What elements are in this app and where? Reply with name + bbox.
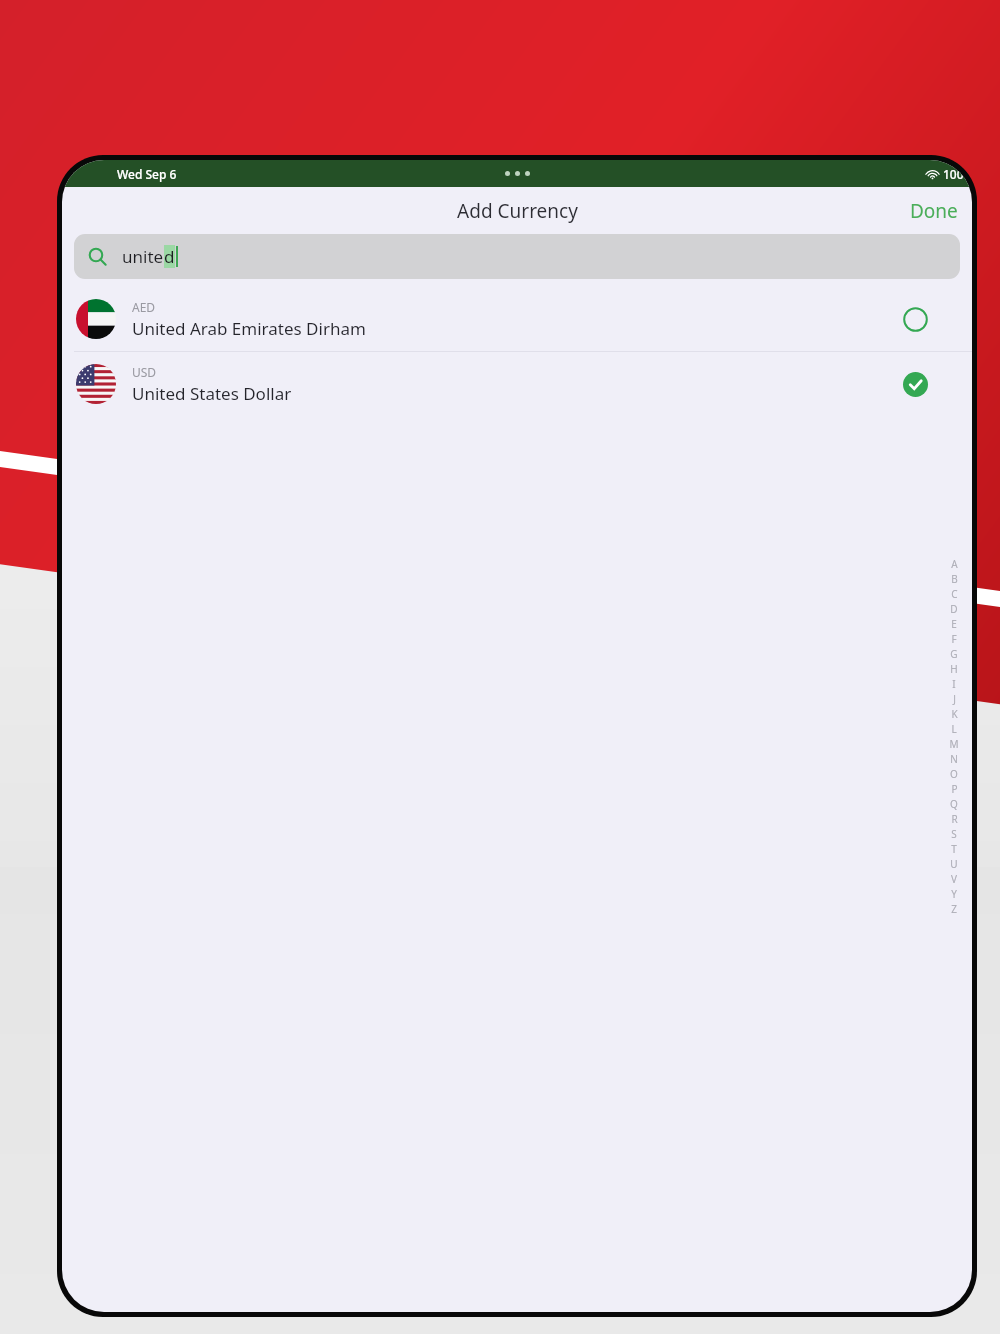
other: Selected (903, 372, 928, 397)
staticText: K (951, 707, 958, 721)
staticText: 100 (943, 166, 964, 182)
staticText: A (951, 557, 958, 571)
button[interactable]: USD (62, 352, 972, 416)
staticText: G (950, 647, 958, 661)
staticText: J (953, 692, 956, 706)
staticText: unite (122, 245, 164, 268)
staticText: N (950, 752, 958, 766)
staticText: Y (951, 887, 957, 901)
staticText: R (951, 812, 958, 826)
staticText: L (951, 722, 957, 736)
staticText: Q (950, 797, 958, 811)
staticText: T (951, 842, 957, 856)
staticText: AED (132, 299, 156, 315)
staticText: U (950, 857, 958, 871)
button[interactable]: AED (62, 287, 972, 351)
staticText: I (952, 677, 956, 691)
staticText: M (949, 737, 959, 751)
staticText: United Arab Emirates Dirham (132, 317, 366, 340)
staticText: Add Currency (457, 198, 578, 224)
staticText: d (164, 245, 175, 268)
staticText: B (951, 572, 958, 586)
staticText: V (951, 872, 957, 886)
button[interactable]: unite (74, 234, 960, 279)
staticText: D (950, 602, 958, 616)
staticText: F (951, 632, 957, 646)
staticText: United States Dollar (132, 382, 292, 405)
button[interactable]: Alphabet index (946, 556, 962, 916)
staticText: H (950, 662, 958, 676)
staticText: Wed Sep 6 (117, 166, 177, 182)
staticText: P (951, 782, 958, 796)
staticText: O (950, 767, 958, 781)
other: Not selected (903, 307, 928, 332)
staticText: USD (132, 364, 157, 380)
button[interactable]: Done (896, 190, 972, 232)
staticText: S (951, 827, 957, 841)
staticText: Z (951, 902, 957, 916)
staticText: C (951, 587, 958, 601)
staticText: E (951, 617, 957, 631)
staticText: Done (910, 198, 958, 224)
